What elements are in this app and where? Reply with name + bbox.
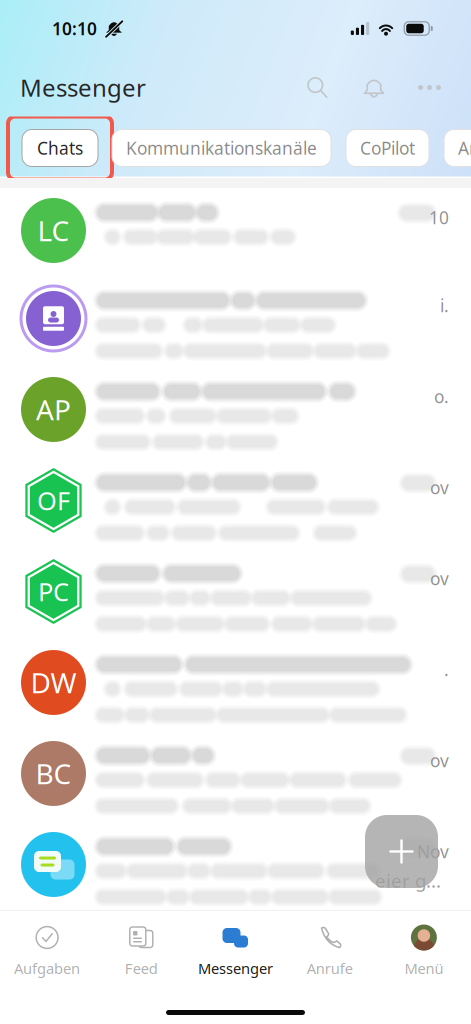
staticText: Messenger	[20, 72, 146, 103]
staticText: BC	[35, 755, 71, 792]
staticText: ov	[430, 567, 449, 590]
button[interactable]: Messenger	[188, 910, 283, 982]
staticText: 10:10	[52, 17, 97, 40]
staticText: 10	[429, 206, 449, 229]
button[interactable]: Nov	[0, 825, 471, 915]
button[interactable]: AP	[0, 370, 471, 461]
staticText: .	[444, 658, 449, 681]
button[interactable]: Kommunikationskanäle	[112, 129, 331, 166]
staticText: Kommunikationskanäle	[126, 136, 317, 159]
staticText: Menü	[404, 958, 443, 978]
button[interactable]: Weitere Optionen	[402, 61, 457, 113]
staticText: DW	[30, 664, 76, 701]
button[interactable]: DW	[0, 643, 471, 734]
staticText: Anrufe	[307, 958, 353, 978]
staticText: OF	[37, 484, 70, 517]
button[interactable]: Menü	[377, 910, 471, 982]
button[interactable]: CoPilot	[346, 129, 429, 166]
button[interactable]: LC	[0, 188, 471, 279]
button[interactable]: Feed	[94, 910, 188, 982]
staticText: ov	[430, 749, 449, 772]
staticText: Anrufe	[458, 136, 471, 159]
staticText: PC	[38, 575, 69, 608]
staticText: Aufgaben	[14, 958, 80, 978]
staticText: ov	[430, 476, 449, 499]
button[interactable]: i.	[0, 279, 471, 370]
staticText: Messenger	[198, 958, 273, 978]
staticText: Feed	[125, 958, 158, 978]
button[interactable]: Neuer Chat	[365, 815, 438, 888]
button[interactable]: Suchen	[289, 61, 346, 113]
button[interactable]: OF	[0, 461, 471, 552]
button[interactable]: Anrufe	[283, 910, 377, 982]
button[interactable]: Aufgaben	[0, 910, 94, 982]
staticText: i.	[440, 294, 449, 317]
staticText: o.	[434, 385, 449, 408]
button[interactable]: Benachrichtigungen	[346, 61, 402, 113]
staticText: eier g...	[375, 868, 441, 893]
button[interactable]: BC	[0, 734, 471, 825]
staticText: CoPilot	[360, 136, 415, 159]
button[interactable]: Anrufe	[444, 129, 471, 166]
staticText: Nov	[417, 840, 449, 863]
staticText: AP	[36, 391, 71, 428]
staticText: Chats	[37, 136, 83, 159]
button[interactable]: PC	[0, 552, 471, 643]
button[interactable]: Chats	[8, 116, 112, 179]
staticText: LC	[37, 212, 69, 249]
